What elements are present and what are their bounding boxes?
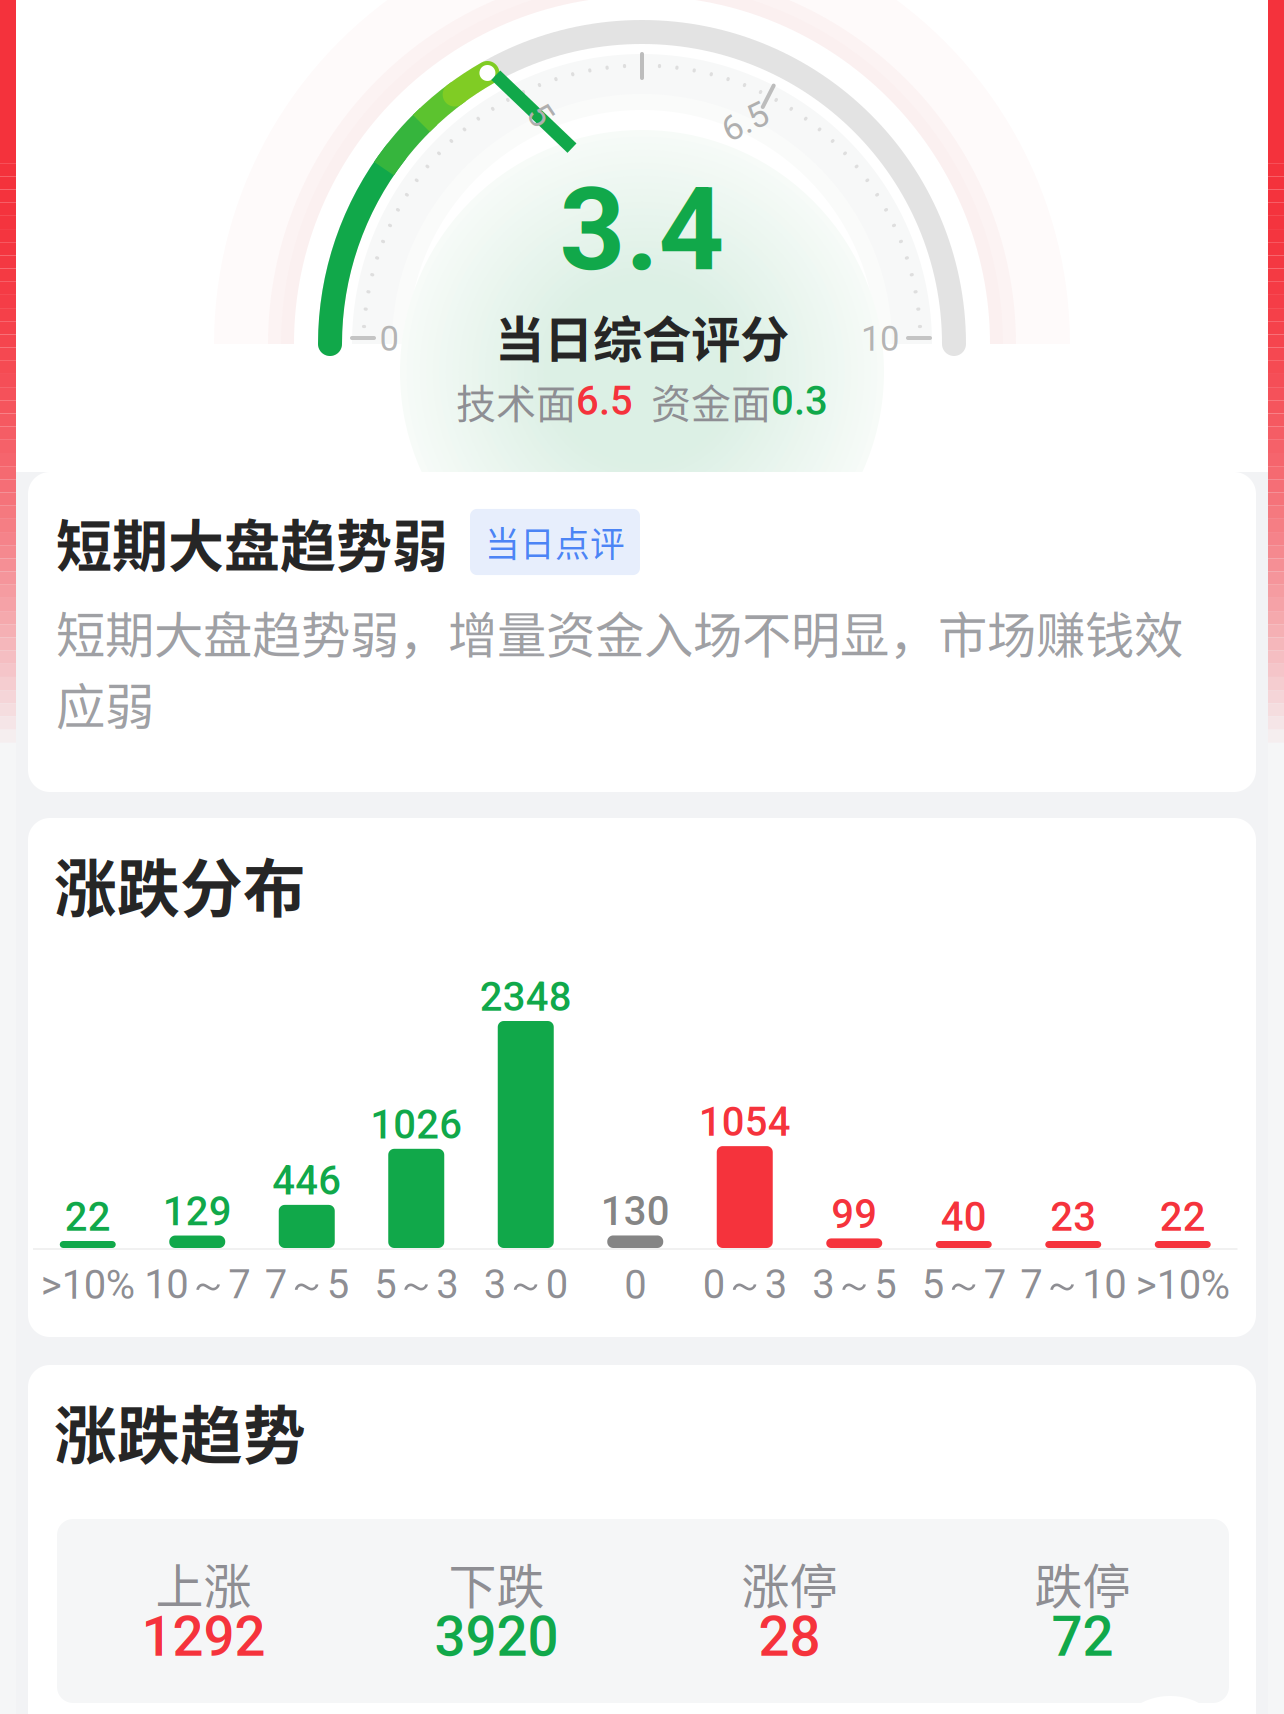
staticText: 短期大盘趋势弱，增量资金入场不明显，市场赚钱效应弱 [56,596,1183,739]
staticText: 3～0 [484,1260,568,1310]
staticText: 0.3 [771,378,828,424]
staticText: 3920 [434,1605,558,1669]
staticText: 72 [1051,1605,1113,1669]
staticText: 3～5 [812,1260,896,1310]
staticText: >10% [1136,1262,1230,1308]
staticText: 0 [624,1262,646,1308]
staticText: 446 [272,1157,341,1204]
staticText: 22 [1160,1194,1206,1240]
staticText: 资金面 [651,372,771,430]
staticText: 5～3 [374,1260,458,1310]
staticText: >10% [41,1262,135,1308]
staticText: 7～5 [265,1260,349,1310]
staticText: 129 [163,1188,232,1235]
staticText: 1054 [699,1099,791,1146]
staticText: 上涨 [155,1548,251,1618]
staticText: 28 [758,1605,820,1669]
staticText: 0 [379,319,398,359]
staticText: 5 [530,95,549,135]
staticText: 1292 [141,1605,265,1669]
staticText: 22 [65,1194,111,1240]
staticText: 技术面 [456,372,576,430]
staticText: 5～7 [922,1260,1006,1310]
staticText: 10～7 [144,1260,250,1310]
staticText: 40 [941,1194,987,1240]
staticText: 短期大盘趋势弱 [56,501,448,583]
staticText: 10 [861,319,899,359]
staticText: 当日点评 [485,517,625,567]
staticText: 涨跌分布 [54,839,306,929]
staticText: 23 [1050,1194,1096,1240]
staticText: 99 [831,1191,877,1238]
staticText: 2348 [480,974,572,1020]
staticText: 6.5 [576,378,633,424]
staticText: 涨跌趋势 [54,1386,306,1476]
staticText: 涨停 [741,1548,837,1618]
staticText: 0～3 [703,1260,787,1310]
staticText: 下跌 [448,1548,544,1618]
staticText: 1026 [370,1101,462,1148]
staticText: 跌停 [1034,1548,1130,1618]
staticText: 3.4 [559,163,724,297]
staticText: 7～10 [1020,1260,1126,1310]
button[interactable]: 短期大盘趋势弱 [28,472,1256,792]
staticText: 当日综合评分 [495,300,789,372]
staticText: 6.5 [721,102,768,142]
staticText: 130 [601,1188,670,1235]
button[interactable]: Assistant [0,0,1284,1714]
